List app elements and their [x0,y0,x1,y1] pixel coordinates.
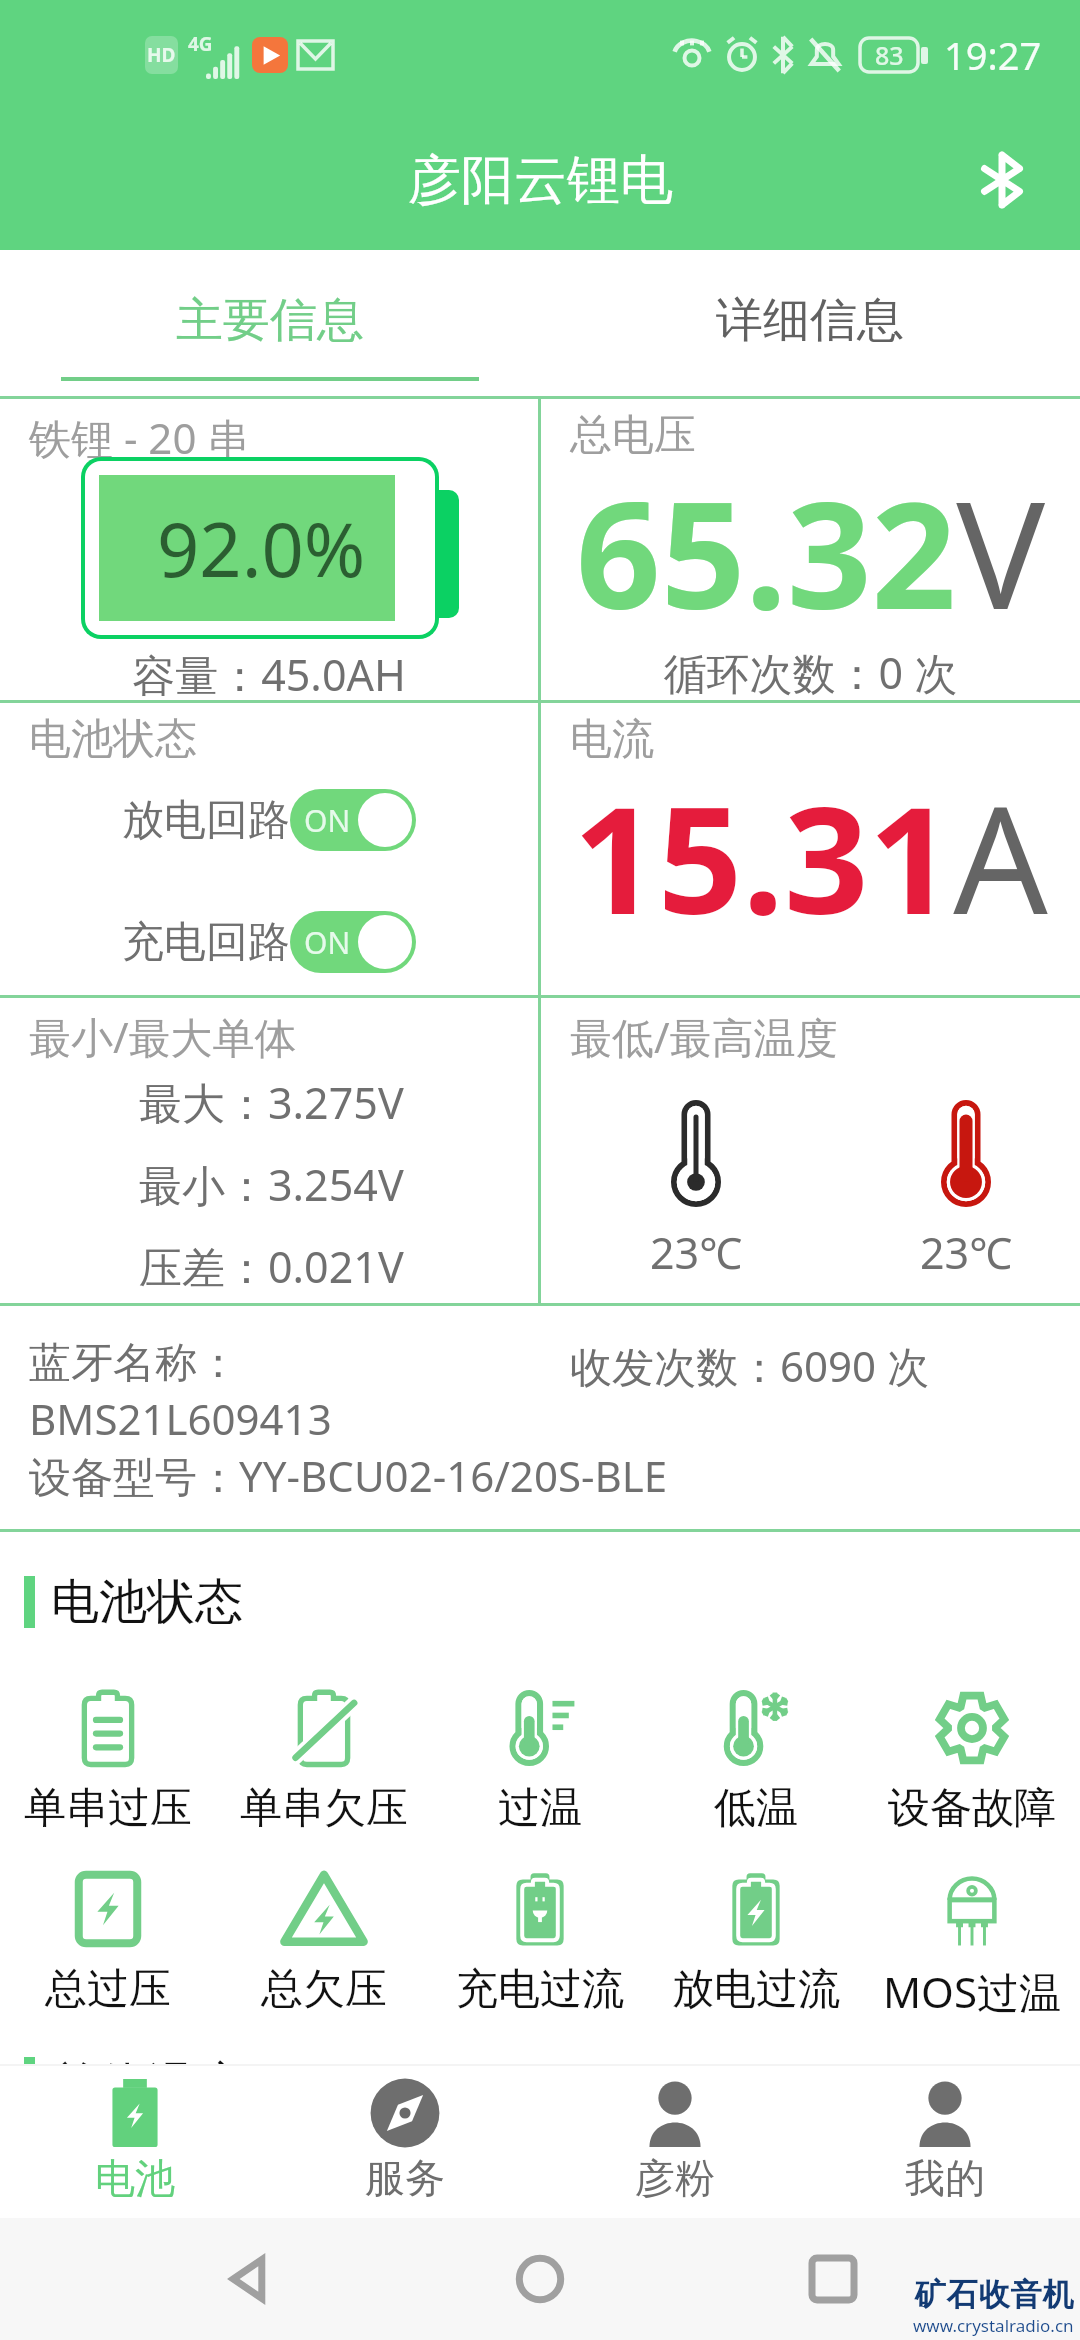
staticText: 19:27 [944,29,1042,81]
staticText: 15.31A [573,756,1048,958]
staticText: 低温 [714,1782,798,1835]
button[interactable]: Recents [788,2234,878,2324]
button[interactable]: 电池 [0,2064,270,2218]
staticText: 彦粉 [635,2153,715,2203]
staticText: 单串过压 [24,1782,192,1835]
staticText: 总电压 [570,409,696,462]
button[interactable]: 主要信息 [0,250,540,396]
staticText: 电池状态 [51,1572,243,1632]
button[interactable]: 充电回路 [122,911,416,973]
button[interactable]: 放电回路 [122,789,416,851]
staticText: 放电回路 [122,794,290,847]
staticText: 压差：0.021V [139,1237,404,1296]
staticText: 详细信息 [716,291,904,350]
button[interactable]: Home [495,2234,585,2324]
staticText: 4G [188,31,213,57]
staticText: 设备型号：YY-BCU02-16/20S-BLE [29,1447,668,1504]
staticText: 彦阳云锂电 [408,147,673,214]
staticText: 单体温度(℃) [51,2050,320,2116]
staticText: 最小/最大单体 [29,1008,297,1065]
staticText: 最大：3.275V [139,1073,404,1132]
button[interactable]: 详细信息 [540,250,1080,396]
staticText: 65.32V [576,451,1046,653]
staticText: 总过压 [45,1963,171,2016]
staticText: www.crystalradio.cn [913,2314,1074,2337]
button[interactable]: Bluetooth [952,130,1052,230]
staticText: 循环次数：0 次 [541,643,1080,702]
button[interactable]: 彦粉 [540,2064,810,2218]
staticText: 过温 [498,1782,582,1835]
staticText: 充电回路 [122,916,290,969]
button[interactable]: Back [203,2234,293,2324]
staticText: 主要信息 [176,291,364,350]
staticText: BMS21L609413 [29,1390,332,1447]
staticText: 电池状态 [29,713,197,766]
staticText: 设备故障 [888,1782,1056,1835]
staticText: HD [147,42,176,68]
staticText: 电池 [95,2153,175,2203]
staticText: 最低/最高温度 [570,1008,838,1065]
button[interactable]: 充电过流 [432,1871,648,2016]
staticText: 容量：45.0AH [0,645,538,704]
staticText: 我的 [905,2153,985,2203]
button[interactable]: 单串欠压 [216,1690,432,1835]
button[interactable]: 我的 [810,2064,1080,2218]
staticText: 电流 [570,713,654,766]
button[interactable]: 放电过流 [648,1871,864,2016]
button[interactable]: MOS过温 [864,1871,1080,2020]
button[interactable]: 单串过压 [0,1690,216,1835]
button[interactable]: 设备故障 [864,1690,1080,1835]
button[interactable]: 总过压 [0,1871,216,2016]
button[interactable]: 总欠压 [216,1871,432,2016]
staticText: 23℃ [920,1223,1012,1282]
staticText: 23℃ [650,1223,742,1282]
button[interactable]: 服务 [270,2064,540,2218]
staticText: 铁锂 - 20 串 [29,409,250,466]
staticText: 83 [875,38,904,72]
button[interactable]: 过温 [432,1690,648,1835]
staticText: 最小：3.254V [139,1155,404,1214]
button[interactable]: 低温 [648,1690,864,1835]
staticText: 矿石收音机 [914,2275,1074,2314]
staticText: 单串欠压 [240,1782,408,1835]
staticText: ON [304,800,351,841]
staticText: 充电过流 [456,1963,624,2016]
staticText: 放电过流 [672,1963,840,2016]
staticText: 总欠压 [261,1963,387,2016]
staticText: 蓝牙名称： [29,1337,239,1390]
staticText: ON [304,922,351,963]
staticText: MOS过温 [883,1963,1061,2020]
staticText: 92.0% [157,498,366,599]
staticText: 服务 [365,2153,445,2203]
staticText: 收发次数：6090 次 [570,1337,930,1394]
